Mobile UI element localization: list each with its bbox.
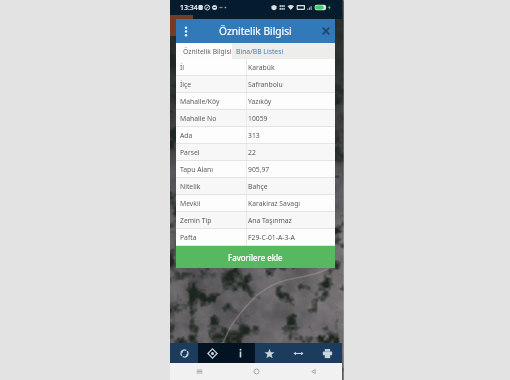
button[interactable]: More options xyxy=(176,19,196,43)
staticText: Bahçe xyxy=(248,182,268,191)
staticText: Karabük xyxy=(248,63,275,72)
staticText: 22 xyxy=(248,148,256,157)
button[interactable]: Favorites xyxy=(255,343,284,363)
staticText: Mahalle No xyxy=(180,114,244,123)
staticText: Safranbolu xyxy=(248,80,283,89)
staticText: Favorilere ekle xyxy=(228,252,283,263)
button[interactable]: Mahalle/Köy xyxy=(176,93,335,110)
staticText: Ada xyxy=(180,131,244,140)
staticText: F29-C-01-A-3-A xyxy=(248,233,295,242)
button[interactable]: Mahalle No xyxy=(176,110,335,127)
staticText: Nitelik xyxy=(180,182,244,191)
staticText: Bina/BB Listesi xyxy=(236,47,284,56)
staticText: Parsel xyxy=(180,148,244,157)
button[interactable]: Home xyxy=(228,363,285,380)
staticText: Yazıköy xyxy=(248,97,272,106)
button[interactable]: Parsel xyxy=(176,144,335,161)
staticText: Mahalle/Köy xyxy=(180,97,244,106)
staticText: 905,97 xyxy=(248,165,270,174)
button[interactable]: Ada xyxy=(176,127,335,144)
button[interactable]: Favorilere ekle xyxy=(176,246,335,268)
staticText: 313 xyxy=(248,131,260,140)
button[interactable]: Info xyxy=(226,343,255,363)
button[interactable]: Mevkii xyxy=(176,195,335,212)
staticText: 10059 xyxy=(248,114,268,123)
staticText: Mevkii xyxy=(180,199,244,208)
button[interactable]: Bina/BB Listesi xyxy=(232,43,335,59)
staticText: 13:34 xyxy=(180,3,198,12)
staticText: Öznitelik Bilgisi xyxy=(219,24,292,38)
button[interactable]: Zemin Tip xyxy=(176,212,335,229)
button[interactable]: Close xyxy=(317,19,335,43)
button[interactable]: Locate xyxy=(198,343,226,363)
button[interactable]: Tapu Alanı xyxy=(176,161,335,178)
staticText: İlçe xyxy=(180,80,244,89)
button[interactable]: Refresh xyxy=(170,343,198,363)
staticText: Ana Taşınmaz xyxy=(248,216,292,225)
button[interactable]: İl xyxy=(176,59,335,76)
button[interactable]: Print xyxy=(313,343,342,363)
staticText: Zemin Tip xyxy=(180,216,244,225)
staticText: Tapu Alanı xyxy=(180,165,244,174)
button[interactable]: Nitelik xyxy=(176,178,335,195)
button[interactable]: Measure xyxy=(284,343,313,363)
button[interactable]: İlçe xyxy=(176,76,335,93)
staticText: Pafta xyxy=(180,233,244,242)
staticText: İl xyxy=(180,63,244,72)
staticText: Öznitelik Bilgisi xyxy=(183,47,232,56)
button[interactable]: Recents xyxy=(170,363,228,380)
button[interactable]: Pafta xyxy=(176,229,335,246)
staticText: Karakiraz Savagı xyxy=(248,199,301,208)
button[interactable]: Öznitelik Bilgisi xyxy=(176,43,232,59)
button[interactable]: Back xyxy=(285,363,342,380)
